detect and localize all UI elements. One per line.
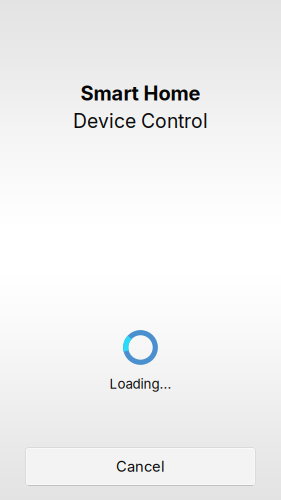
staticText: Device Control xyxy=(73,109,208,133)
staticText: Cancel xyxy=(116,458,165,475)
staticText: Loading... xyxy=(109,376,171,392)
staticText: Smart Home xyxy=(80,81,200,105)
button[interactable]: Cancel xyxy=(25,447,256,486)
